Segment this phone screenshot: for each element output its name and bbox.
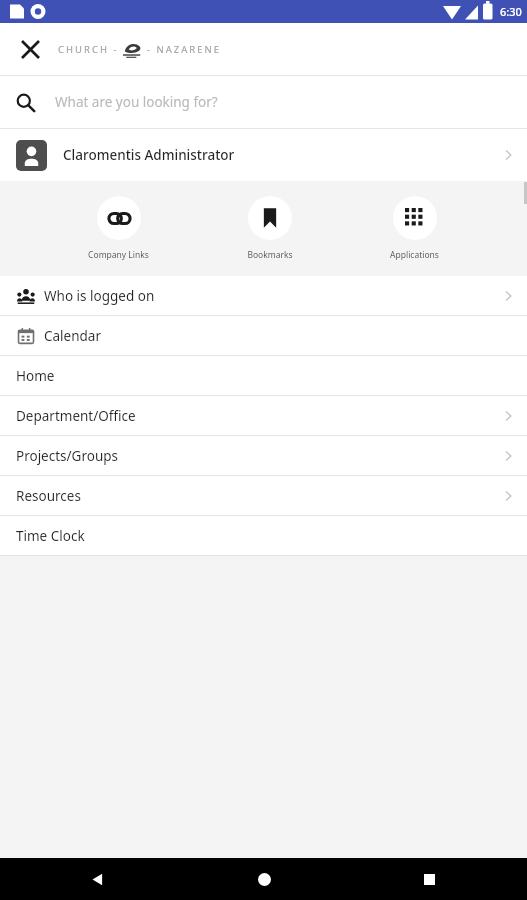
button[interactable]: Home [0,356,527,395]
button[interactable]: Time Clock [0,516,527,555]
button[interactable]: Home [244,859,284,899]
staticText: Applications [390,249,439,261]
staticText: Company Links [88,249,149,261]
staticText: Resources [16,487,81,505]
button[interactable]: What are you looking for? [0,76,527,128]
staticText: Bookmarks [247,249,293,261]
staticText: Claromentis Administrator [63,146,235,164]
button[interactable]: Back [78,859,118,899]
staticText: Calendar [44,327,101,345]
staticText: Department/Office [16,407,136,425]
staticText: Who is logged on [44,287,155,305]
button[interactable]: Projects/Groups [0,436,527,475]
button[interactable]: Who is logged on [0,276,527,315]
button[interactable]: Applications [370,188,459,269]
staticText: CHURCH - [58,43,119,56]
staticText: Time Clock [16,527,85,545]
button[interactable]: Department/Office [0,396,527,435]
staticText: - NAZARENE [147,43,222,56]
staticText: What are you looking for? [55,93,218,111]
button[interactable]: Claromentis Administrator [0,129,527,181]
button[interactable]: Calendar [0,316,527,355]
button[interactable]: Bookmarks [227,188,313,269]
button[interactable]: Resources [0,476,527,515]
staticText: Home [16,367,55,385]
button[interactable]: Company Links [68,188,169,269]
button[interactable]: Close [10,29,50,69]
staticText: Projects/Groups [16,447,118,465]
staticText: 6:30 [500,4,522,19]
button[interactable]: Recents [409,859,449,899]
